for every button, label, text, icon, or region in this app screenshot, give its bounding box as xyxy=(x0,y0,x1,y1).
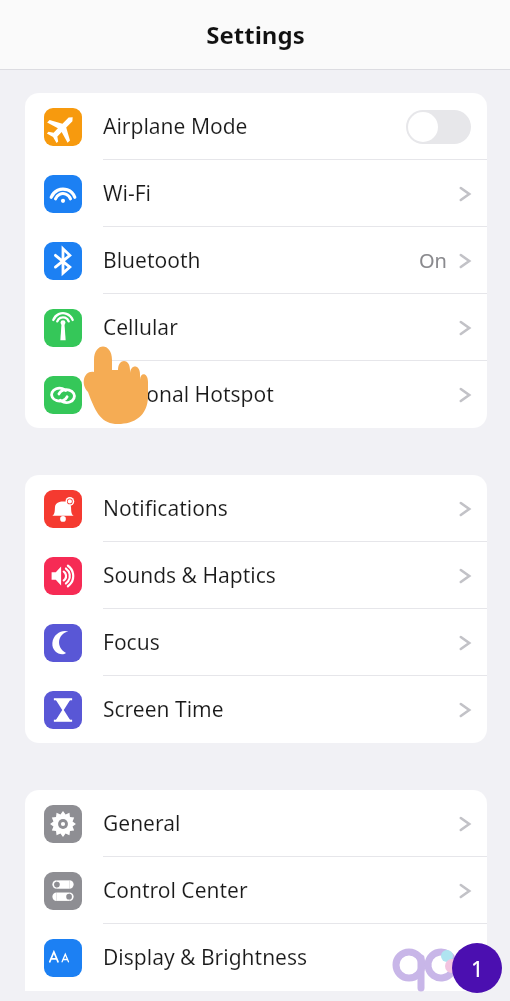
button[interactable]: Notification count 1 xyxy=(452,943,502,993)
button[interactable]: Screen Time xyxy=(25,676,487,743)
button[interactable]: Bluetooth xyxy=(25,227,487,294)
staticText: Screen Time xyxy=(103,695,224,724)
staticText: Sounds & Haptics xyxy=(103,561,276,590)
button[interactable]: Personal Hotspot xyxy=(25,361,487,428)
button[interactable]: Focus xyxy=(25,609,487,676)
button[interactable]: Airplane Mode xyxy=(25,93,487,160)
staticText: General xyxy=(103,809,181,838)
staticText: Settings xyxy=(206,18,305,51)
staticText: Control Center xyxy=(103,876,248,905)
staticText: Cellular xyxy=(103,313,178,342)
staticText: 1 xyxy=(471,953,484,983)
button[interactable]: Control Center xyxy=(25,857,487,924)
staticText: On xyxy=(419,247,447,274)
staticText: Notifications xyxy=(103,494,228,523)
staticText: Focus xyxy=(103,628,160,657)
staticText: Airplane Mode xyxy=(103,112,248,141)
button[interactable]: Display & Brightness xyxy=(25,924,487,991)
button[interactable]: Airplane Mode toggle xyxy=(406,110,471,144)
button[interactable]: Sounds & Haptics xyxy=(25,542,487,609)
button[interactable]: Cellular xyxy=(25,294,487,361)
staticText: Personal Hotspot xyxy=(103,380,274,409)
staticText: Display & Brightness xyxy=(103,943,308,972)
button[interactable]: General xyxy=(25,790,487,857)
button[interactable]: Notifications xyxy=(25,475,487,542)
staticText: Wi-Fi xyxy=(103,179,152,208)
button[interactable]: Wi-Fi xyxy=(25,160,487,227)
staticText: Bluetooth xyxy=(103,246,201,275)
